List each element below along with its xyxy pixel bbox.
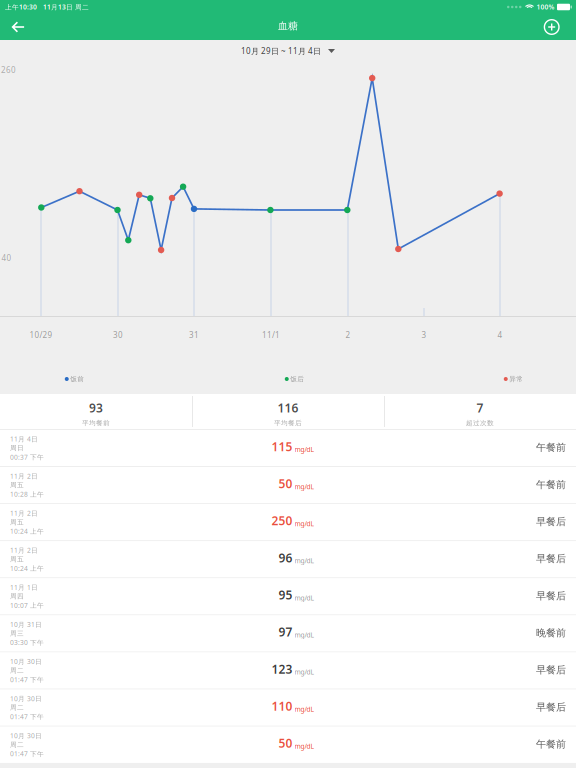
staticText: 96 (278, 550, 292, 566)
button[interactable]: 11月 2日 (0, 466, 576, 503)
staticText: 10月 30日 (10, 731, 42, 740)
staticText: mg/dL (294, 556, 313, 565)
button[interactable]: 10月 29日 ~ 11月 4日 (0, 40, 576, 62)
staticText: 11/1 (262, 330, 280, 340)
staticText: mg/dL (294, 482, 313, 491)
staticText: 40 (1, 253, 11, 263)
staticText: 早餐后 (536, 589, 566, 602)
staticText: 周二 (10, 666, 24, 675)
staticText: 11月 1日 (10, 583, 38, 592)
staticText: 10:24 上午 (10, 527, 44, 536)
staticText: 31 (189, 330, 199, 340)
staticText: 03:30 下午 (10, 638, 44, 647)
staticText: 110 (271, 698, 292, 714)
staticText: 10月 31日 (10, 620, 42, 629)
staticText: 10:24 上午 (10, 564, 44, 573)
staticText: 平均餐前 (82, 419, 110, 427)
staticText: 10月 29日 ~ 11月 4日 (241, 46, 321, 56)
staticText: 10/29 (29, 330, 52, 340)
staticText: 10月 30日 (10, 657, 42, 666)
staticText: 周二 (10, 703, 24, 712)
staticText: 上午10:30 11月13日 周二 (5, 3, 89, 11)
staticText: mg/dL (294, 519, 313, 528)
staticText: 115 (271, 438, 292, 454)
staticText: 11月 4日 (10, 435, 38, 443)
staticText: mg/dL (294, 593, 313, 602)
staticText: 7 (476, 400, 483, 416)
staticText: 午餐前 (536, 441, 566, 454)
button[interactable]: 10月 30日 (0, 689, 576, 726)
staticText: mg/dL (294, 742, 313, 751)
staticText: 01:47 下午 (10, 675, 44, 684)
staticText: 早餐后 (536, 701, 566, 713)
staticText: 周日 (10, 444, 24, 452)
staticText: 00:37 下午 (10, 453, 44, 461)
button[interactable]: 11月 2日 (0, 503, 576, 540)
button[interactable]: Back (0, 14, 38, 40)
staticText: 饭前 (70, 375, 84, 383)
staticText: 晚餐前 (536, 627, 566, 639)
staticText: 50 (278, 735, 292, 751)
staticText: 早餐后 (536, 552, 566, 565)
button[interactable]: 11月 1日 (0, 577, 576, 614)
staticText: 血糖 (278, 20, 298, 32)
staticText: 11月 2日 (10, 472, 38, 481)
staticText: 午餐前 (536, 478, 566, 491)
button[interactable]: 11月 4日 (0, 429, 576, 466)
staticText: 周四 (10, 592, 24, 600)
staticText: 周五 (10, 518, 24, 526)
staticText: 123 (271, 661, 292, 677)
staticText: 30 (113, 330, 123, 340)
staticText: 97 (278, 624, 292, 640)
staticText: 3 (421, 330, 426, 340)
staticText: 异常 (509, 375, 523, 383)
staticText: mg/dL (294, 705, 313, 713)
button[interactable]: 11月 2日 (0, 540, 576, 577)
staticText: 50 (278, 476, 292, 491)
staticText: 10:28 上午 (10, 490, 44, 499)
staticText: mg/dL (294, 445, 313, 454)
staticText: 早餐后 (536, 515, 566, 528)
staticText: 11月 2日 (10, 546, 38, 555)
staticText: mg/dL (294, 630, 313, 639)
staticText: 早餐后 (536, 664, 566, 676)
button[interactable]: Add (530, 14, 576, 40)
staticText: 午餐前 (536, 738, 566, 750)
staticText: 4 (497, 330, 502, 340)
staticText: 周五 (10, 555, 24, 563)
staticText: 10月 30日 (10, 694, 42, 703)
staticText: 2 (345, 330, 350, 340)
staticText: mg/dL (294, 668, 313, 676)
button[interactable]: 10月 30日 (0, 651, 576, 689)
button[interactable]: 10月 31日 (0, 614, 576, 651)
button[interactable]: 10月 30日 (0, 726, 576, 763)
staticText: 93 (89, 400, 103, 416)
staticText: 10:07 上午 (10, 601, 44, 610)
staticText: 周五 (10, 481, 24, 489)
staticText: 饭后 (290, 375, 304, 383)
staticText: 260 (1, 65, 16, 75)
staticText: 116 (277, 400, 298, 416)
staticText: 周三 (10, 629, 24, 637)
staticText: 01:47 下午 (10, 712, 44, 721)
staticText: 01:47 下午 (10, 749, 44, 758)
staticText: 100% (536, 3, 554, 11)
staticText: 周二 (10, 741, 24, 749)
staticText: 超过次数 (466, 419, 494, 427)
staticText: 250 (271, 513, 292, 529)
staticText: 平均餐后 (274, 419, 302, 427)
staticText: 11月 2日 (10, 509, 38, 518)
staticText: 95 (278, 587, 292, 603)
